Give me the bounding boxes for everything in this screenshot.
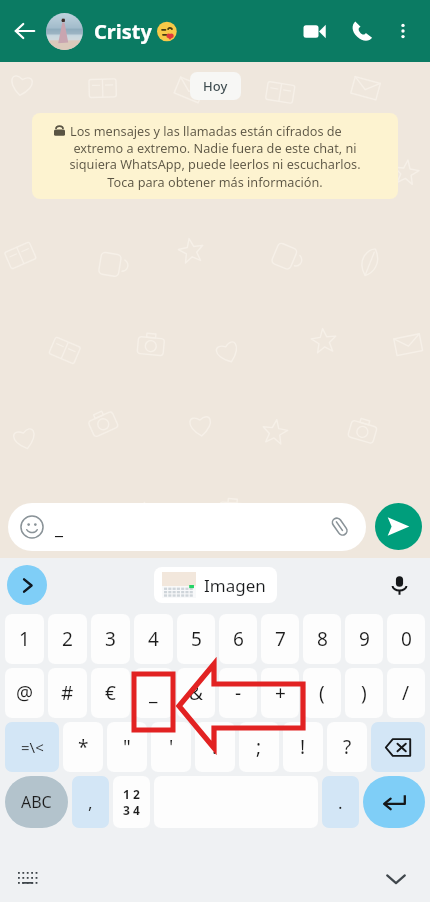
button[interactable]: , — [72, 776, 109, 828]
staticText: Hoy — [203, 77, 228, 95]
button[interactable]: Emoji — [19, 514, 45, 540]
button[interactable]: ; — [239, 722, 279, 772]
button[interactable]: Imagen — [154, 567, 277, 603]
button[interactable]: ' — [151, 722, 191, 772]
staticText: ) — [361, 680, 367, 706]
staticText: 4 — [148, 626, 159, 652]
button[interactable]: More options — [386, 14, 420, 48]
button[interactable]: @ — [5, 668, 44, 718]
staticText: € — [105, 680, 116, 706]
button[interactable]: Video call — [294, 11, 334, 51]
button[interactable]: Hoy — [190, 72, 241, 100]
staticText: ( — [319, 680, 325, 706]
staticText: =\< — [21, 737, 44, 757]
staticText: ' — [169, 734, 174, 760]
button[interactable]: € — [91, 668, 130, 718]
button[interactable]: Send — [375, 503, 422, 550]
staticText: Toca para obtener más información. — [43, 173, 387, 190]
button[interactable]: 5 — [177, 614, 215, 664]
button[interactable]: More suggestions — [7, 565, 47, 605]
button[interactable]: 7 — [261, 614, 299, 664]
button[interactable]: ( — [303, 668, 341, 718]
button[interactable]: Delete — [371, 722, 425, 772]
button[interactable]: & — [177, 668, 215, 718]
staticText: ABC — [21, 791, 52, 813]
button[interactable]: 6 — [219, 614, 257, 664]
button[interactable]: : — [195, 722, 235, 772]
button[interactable]: ! — [283, 722, 323, 772]
staticText: . — [338, 791, 343, 814]
staticText: - — [235, 680, 242, 706]
button[interactable]: . — [322, 776, 359, 828]
button[interactable]: - — [219, 668, 257, 718]
button[interactable]: / — [387, 668, 425, 718]
button[interactable]: ? — [327, 722, 367, 772]
button[interactable]: Emoji — [8, 503, 366, 551]
staticText: 1 2 — [123, 786, 140, 802]
staticText: _ — [55, 515, 63, 540]
staticText: & — [189, 680, 203, 706]
staticText: extremo a extremo. Nadie fuera de este c… — [43, 139, 387, 173]
button[interactable]: ABC — [5, 776, 68, 828]
button[interactable]: 3 — [91, 614, 130, 664]
staticText: 9 — [359, 626, 370, 652]
button[interactable]: 2 — [48, 614, 87, 664]
button[interactable]: 9 — [345, 614, 383, 664]
staticText: Cristy — [94, 18, 152, 45]
staticText: * — [78, 734, 89, 760]
button[interactable]: Numbers — [113, 776, 150, 828]
staticText: # — [61, 680, 74, 706]
staticText: 1 — [19, 626, 30, 652]
button[interactable]: 8 — [303, 614, 341, 664]
button[interactable]: Voice input — [382, 568, 416, 602]
staticText: @ — [16, 680, 34, 706]
staticText: ! — [300, 734, 306, 760]
staticText: + — [275, 680, 286, 706]
staticText: : — [212, 734, 218, 760]
staticText: 7 — [275, 626, 286, 652]
button[interactable]: Back — [8, 14, 42, 48]
staticText: Los mensajes y las llamadas están cifrad… — [70, 122, 342, 139]
staticText: ; — [256, 734, 262, 760]
staticText: 6 — [233, 626, 244, 652]
staticText: / — [402, 680, 410, 706]
button[interactable]: Enter — [363, 776, 425, 828]
staticText: " — [123, 734, 131, 760]
staticText: 2 — [62, 626, 73, 652]
staticText: 8 — [317, 626, 328, 652]
button[interactable]: Hide keyboard — [380, 863, 412, 895]
staticText: Imagen — [204, 574, 266, 597]
button[interactable]: _ — [134, 668, 173, 718]
button[interactable]: Switch keyboard — [14, 864, 44, 894]
button[interactable]: 4 — [134, 614, 173, 664]
button[interactable]: 0 — [387, 614, 425, 664]
staticText: _ — [149, 680, 158, 706]
staticText: ? — [343, 734, 352, 760]
button[interactable]: =\< — [5, 722, 59, 772]
button[interactable]: 1 — [5, 614, 44, 664]
staticText: 3 — [105, 626, 116, 652]
button[interactable]: Voice call — [342, 11, 382, 51]
button[interactable]: + — [261, 668, 299, 718]
button[interactable]: * — [63, 722, 103, 772]
button[interactable]: " — [107, 722, 147, 772]
button[interactable]: Cristy — [46, 0, 294, 62]
staticText: 3 4 — [123, 802, 140, 818]
staticText: , — [88, 791, 93, 814]
button[interactable]: Los mensajes y las llamadas están cifrad… — [32, 113, 398, 199]
staticText: 5 — [191, 626, 202, 652]
button[interactable]: # — [48, 668, 87, 718]
staticText: 0 — [401, 626, 412, 652]
button[interactable]: ) — [345, 668, 383, 718]
button[interactable]: Attach — [325, 512, 355, 542]
